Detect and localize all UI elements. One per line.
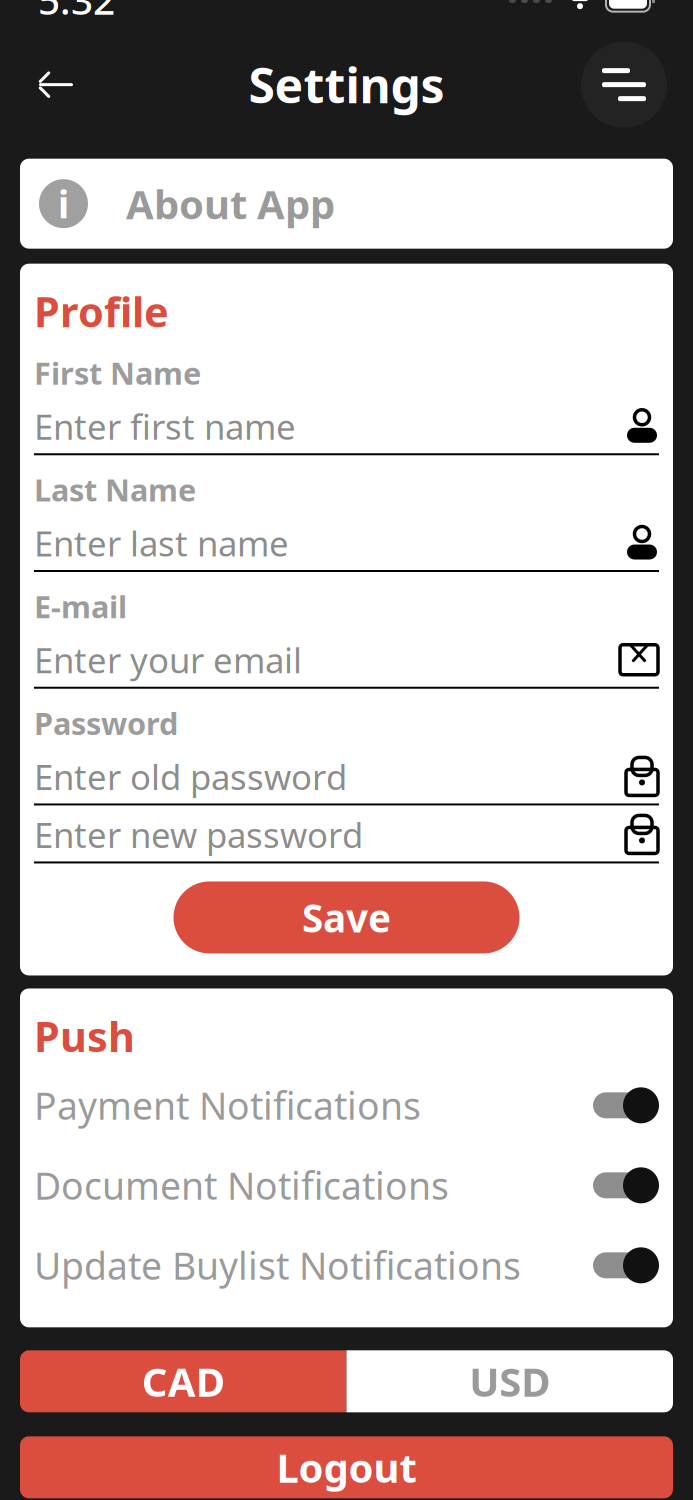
staticText: About App (126, 177, 335, 230)
staticText: Save (302, 892, 391, 943)
staticText: Profile (34, 284, 169, 339)
staticText: Settings (248, 53, 444, 116)
staticText: Enter new password (34, 811, 363, 857)
button[interactable]: USD (346, 1350, 673, 1412)
staticText: E-mail (34, 586, 127, 627)
button[interactable]: Back (26, 55, 86, 115)
button[interactable]: Menu (581, 42, 667, 128)
staticText: Enter old password (34, 753, 347, 799)
button[interactable]: Save (173, 881, 519, 953)
staticText: Enter last name (34, 520, 289, 566)
button[interactable]: Payment Notifications (34, 1077, 659, 1133)
button[interactable]: Logout (20, 1436, 673, 1498)
staticText: Payment Notifications (34, 1080, 421, 1130)
button[interactable]: CAD (20, 1350, 346, 1412)
staticText: Enter your email (34, 637, 302, 683)
staticText: Document Notifications (34, 1160, 449, 1210)
staticText: Update Buylist Notifications (34, 1240, 521, 1290)
button[interactable]: Update Buylist Notifications (34, 1237, 659, 1293)
staticText: Password (34, 703, 178, 743)
staticText: 5:32 (38, 0, 115, 25)
staticText: i (58, 179, 69, 228)
staticText: Push (34, 1008, 135, 1063)
button[interactable]: i (20, 159, 673, 249)
staticText: Last Name (34, 469, 196, 510)
staticText: First Name (34, 353, 201, 393)
staticText: Enter first name (34, 403, 296, 449)
staticText: USD (469, 1355, 550, 1408)
staticText: CAD (142, 1355, 225, 1408)
button[interactable]: Document Notifications (34, 1157, 659, 1213)
staticText: Logout (276, 1441, 416, 1494)
